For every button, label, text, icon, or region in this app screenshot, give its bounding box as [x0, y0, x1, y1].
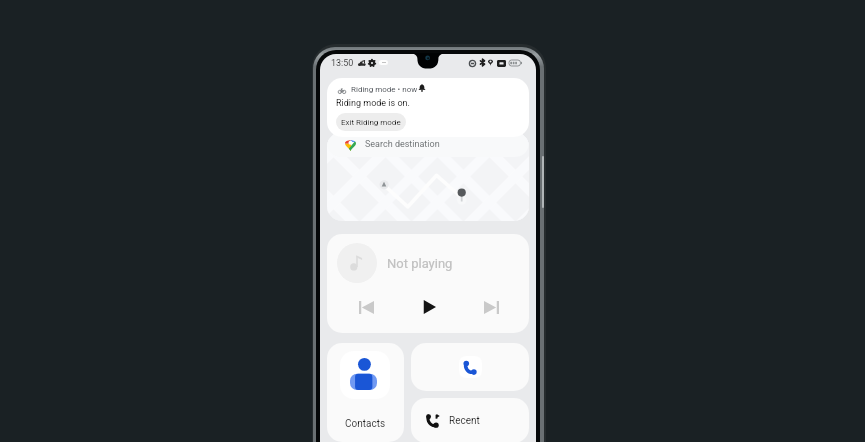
button[interactable]: Play [416, 294, 442, 320]
staticText: Recent [449, 415, 480, 427]
staticText: Not playing [387, 256, 453, 271]
staticText: Riding mode • now [351, 85, 418, 94]
button[interactable]: Phone [411, 343, 529, 391]
staticText: Exit Riding mode [341, 118, 401, 127]
button[interactable]: Contacts [327, 343, 404, 442]
button[interactable]: Exit Riding mode [336, 113, 406, 131]
button[interactable]: Previous track [353, 294, 379, 320]
button[interactable]: Next track [478, 294, 504, 320]
staticText: Riding mode is on. [336, 98, 410, 109]
staticText: Search destination [365, 139, 440, 150]
button[interactable]: Riding mode • now [327, 78, 529, 137]
staticText: Contacts [345, 418, 386, 430]
button[interactable]: Recent [411, 398, 529, 442]
button[interactable]: Not playing [327, 234, 529, 333]
button[interactable]: Search destination [327, 132, 529, 221]
staticText: 13:50 [331, 58, 354, 69]
